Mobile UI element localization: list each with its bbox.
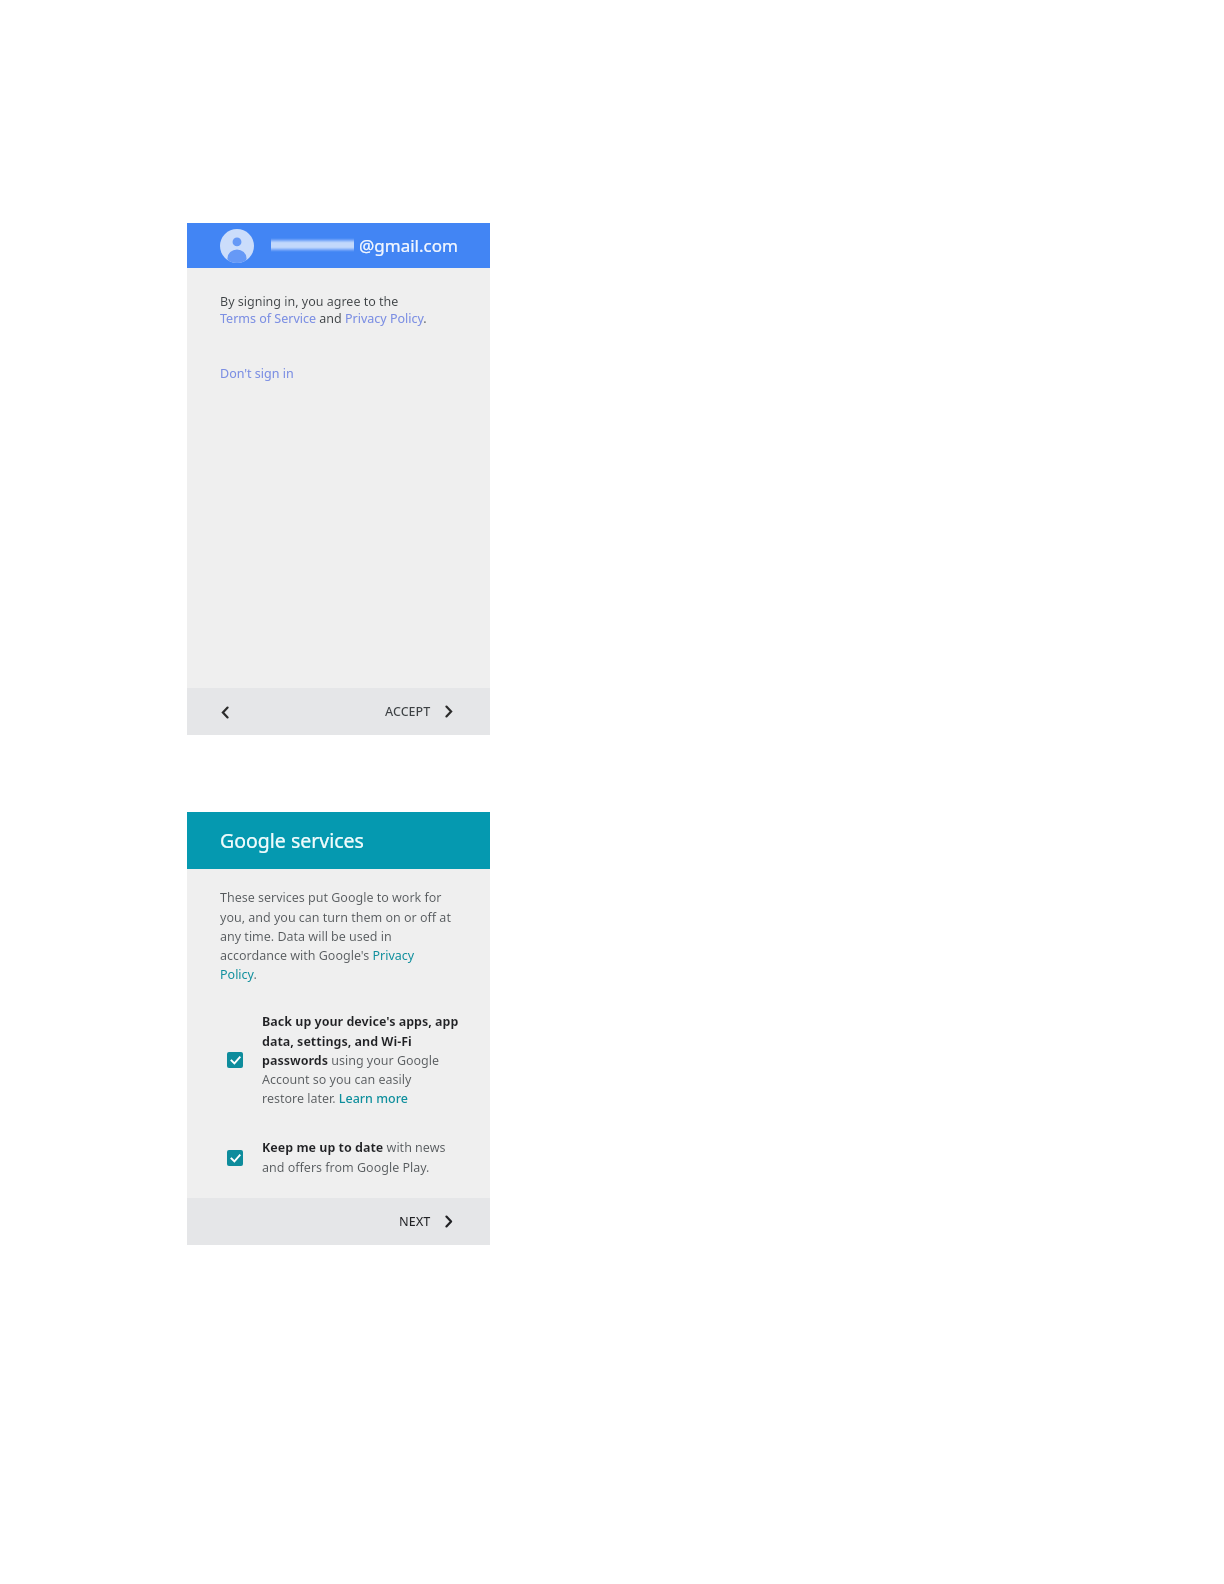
- staticText: Keep me up to date with news and offers …: [262, 1139, 446, 1176]
- button[interactable]: @gmail.com: [187, 223, 490, 268]
- staticText: Google services: [220, 827, 364, 854]
- button[interactable]: Back: [209, 696, 241, 728]
- button[interactable]: ACCEPT: [379, 695, 461, 728]
- staticText: These services put Google to work for yo…: [220, 889, 451, 983]
- button[interactable]: Don't sign in: [220, 365, 294, 382]
- staticText: @gmail.com: [359, 234, 458, 257]
- button[interactable]: Back up your device's apps, app data, se…: [187, 1013, 490, 1107]
- button[interactable]: NEXT: [393, 1205, 461, 1238]
- staticText: By signing in, you agree to the: [220, 293, 399, 310]
- button[interactable]: Keep me up to date with news and offers …: [187, 1139, 490, 1176]
- button[interactable]: Terms of Service and Privacy Policy.: [220, 310, 427, 327]
- staticText: ACCEPT: [385, 703, 431, 720]
- staticText: NEXT: [399, 1213, 431, 1230]
- staticText: Back up your device's apps, app data, se…: [262, 1013, 459, 1107]
